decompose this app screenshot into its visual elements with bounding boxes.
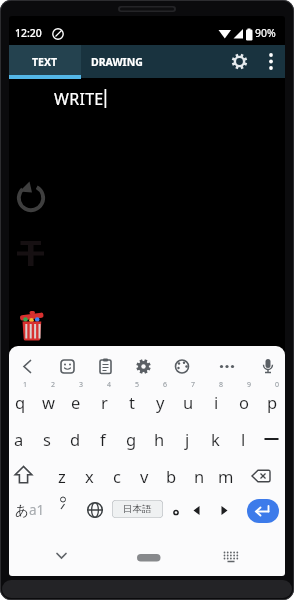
button[interactable]: m bbox=[213, 461, 239, 491]
button[interactable]: p bbox=[259, 387, 285, 417]
staticText: 2 bbox=[51, 380, 56, 390]
staticText: k bbox=[211, 428, 220, 450]
button[interactable] bbox=[202, 355, 239, 377]
button[interactable] bbox=[11, 464, 35, 489]
staticText: i bbox=[214, 391, 219, 413]
button[interactable]: c bbox=[104, 461, 130, 491]
button[interactable]: w bbox=[35, 387, 61, 417]
button[interactable]: a bbox=[9, 424, 32, 454]
staticText: 6 bbox=[163, 380, 168, 390]
staticText: v bbox=[140, 465, 149, 487]
button[interactable]: k bbox=[202, 424, 228, 454]
staticText: y bbox=[156, 391, 165, 413]
staticText: g bbox=[126, 428, 137, 450]
staticText: n bbox=[194, 465, 205, 487]
staticText: u bbox=[183, 391, 194, 413]
button[interactable] bbox=[247, 499, 279, 523]
staticText: b bbox=[166, 465, 177, 487]
staticText: f bbox=[100, 428, 106, 450]
button[interactable] bbox=[131, 548, 167, 566]
button[interactable]: b bbox=[158, 461, 184, 491]
staticText: 0 bbox=[275, 380, 280, 390]
staticText: 5 bbox=[135, 380, 140, 390]
staticText: DRAWING bbox=[91, 55, 143, 69]
button[interactable] bbox=[261, 49, 281, 74]
staticText: q bbox=[15, 391, 26, 413]
button[interactable]: x bbox=[76, 461, 102, 491]
staticText: 7 bbox=[191, 380, 196, 390]
staticText: あ bbox=[15, 502, 29, 519]
button[interactable]: i bbox=[203, 387, 229, 417]
staticText: 90% bbox=[255, 26, 276, 40]
button[interactable] bbox=[51, 546, 73, 566]
staticText: d bbox=[70, 428, 81, 450]
staticText: r bbox=[101, 391, 108, 413]
staticText: c bbox=[113, 465, 121, 487]
staticText: a1 bbox=[29, 501, 45, 519]
button[interactable]: j bbox=[174, 424, 200, 454]
staticText: p bbox=[267, 391, 278, 413]
staticText: o bbox=[239, 391, 249, 413]
button[interactable]: n bbox=[186, 461, 212, 491]
button[interactable] bbox=[128, 355, 165, 377]
button[interactable]: s bbox=[34, 424, 60, 454]
staticText: m bbox=[218, 465, 234, 487]
button[interactable]: u bbox=[175, 387, 201, 417]
button[interactable]: DRAWING bbox=[81, 45, 153, 78]
button[interactable] bbox=[21, 311, 43, 341]
staticText: l bbox=[241, 428, 246, 450]
staticText: 12:20 bbox=[15, 26, 42, 40]
button[interactable]: v bbox=[131, 461, 157, 491]
button[interactable]: y bbox=[147, 387, 173, 417]
button[interactable] bbox=[249, 464, 275, 489]
staticText: e bbox=[71, 391, 81, 413]
staticText: h bbox=[154, 428, 165, 450]
button[interactable] bbox=[165, 355, 202, 377]
button[interactable]: 日本語 bbox=[112, 500, 163, 518]
button[interactable]: z bbox=[49, 461, 75, 491]
staticText: 1 bbox=[23, 380, 28, 390]
button[interactable]: o bbox=[231, 387, 257, 417]
button[interactable] bbox=[217, 546, 241, 566]
staticText: z bbox=[58, 465, 66, 487]
staticText: a bbox=[14, 428, 24, 450]
staticText: 9 bbox=[247, 380, 252, 390]
button[interactable] bbox=[17, 355, 54, 377]
button[interactable] bbox=[91, 355, 128, 377]
button[interactable] bbox=[227, 49, 252, 74]
button[interactable]: r bbox=[91, 387, 117, 417]
staticText: j bbox=[185, 428, 190, 450]
button[interactable]: l bbox=[230, 424, 256, 454]
staticText: 3 bbox=[79, 380, 84, 390]
staticText: 日本語 bbox=[123, 503, 152, 515]
button[interactable] bbox=[54, 355, 91, 377]
button[interactable] bbox=[239, 355, 276, 377]
staticText: TEXT bbox=[32, 55, 58, 69]
button[interactable] bbox=[261, 429, 285, 449]
button[interactable]: h bbox=[146, 424, 172, 454]
button[interactable]: f bbox=[90, 424, 116, 454]
button[interactable]: e bbox=[63, 387, 89, 417]
staticText: 4 bbox=[107, 380, 112, 390]
button[interactable]: d bbox=[62, 424, 88, 454]
staticText: w bbox=[42, 391, 55, 413]
staticText: 8 bbox=[219, 380, 224, 390]
staticText: t bbox=[129, 391, 135, 413]
button[interactable]: g bbox=[118, 424, 144, 454]
button[interactable] bbox=[17, 180, 44, 212]
button[interactable]: あ bbox=[10, 499, 50, 520]
button[interactable]: t bbox=[119, 387, 145, 417]
button[interactable]: q bbox=[9, 387, 33, 417]
staticText: s bbox=[43, 428, 51, 450]
staticText: WRITE bbox=[54, 88, 104, 110]
staticText: x bbox=[85, 465, 94, 487]
button[interactable]: TEXT bbox=[9, 45, 81, 78]
